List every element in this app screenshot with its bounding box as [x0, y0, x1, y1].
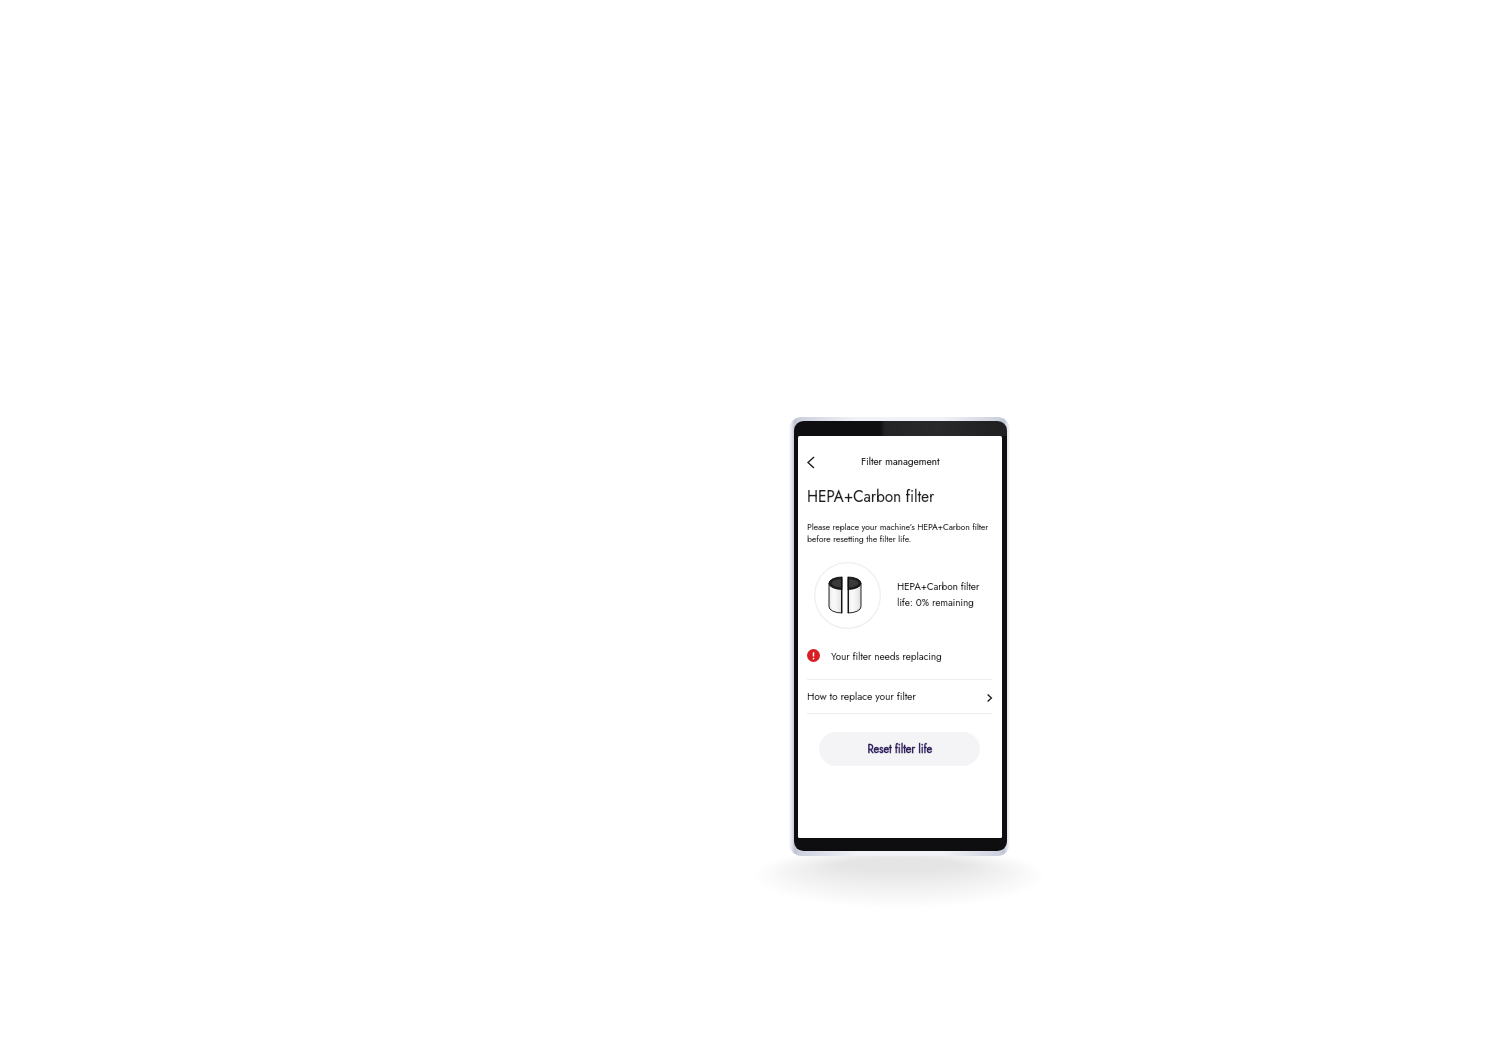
staticText: Please replace your machine’s HEPA+Carbo… [807, 520, 988, 546]
button[interactable]: Back [798, 446, 821, 472]
staticText: HEPA+Carbon filter life: 0% remaining [897, 579, 980, 610]
staticText: How to replace your filter [807, 688, 916, 704]
button[interactable]: How to replace your filter [807, 679, 992, 713]
button[interactable]: Reset filter life [819, 732, 980, 766]
staticText: Filter management [861, 453, 940, 469]
staticText: HEPA+Carbon filter [807, 484, 934, 508]
staticText: Reset filter life [867, 741, 933, 758]
staticText: Your filter needs replacing [831, 649, 942, 662]
